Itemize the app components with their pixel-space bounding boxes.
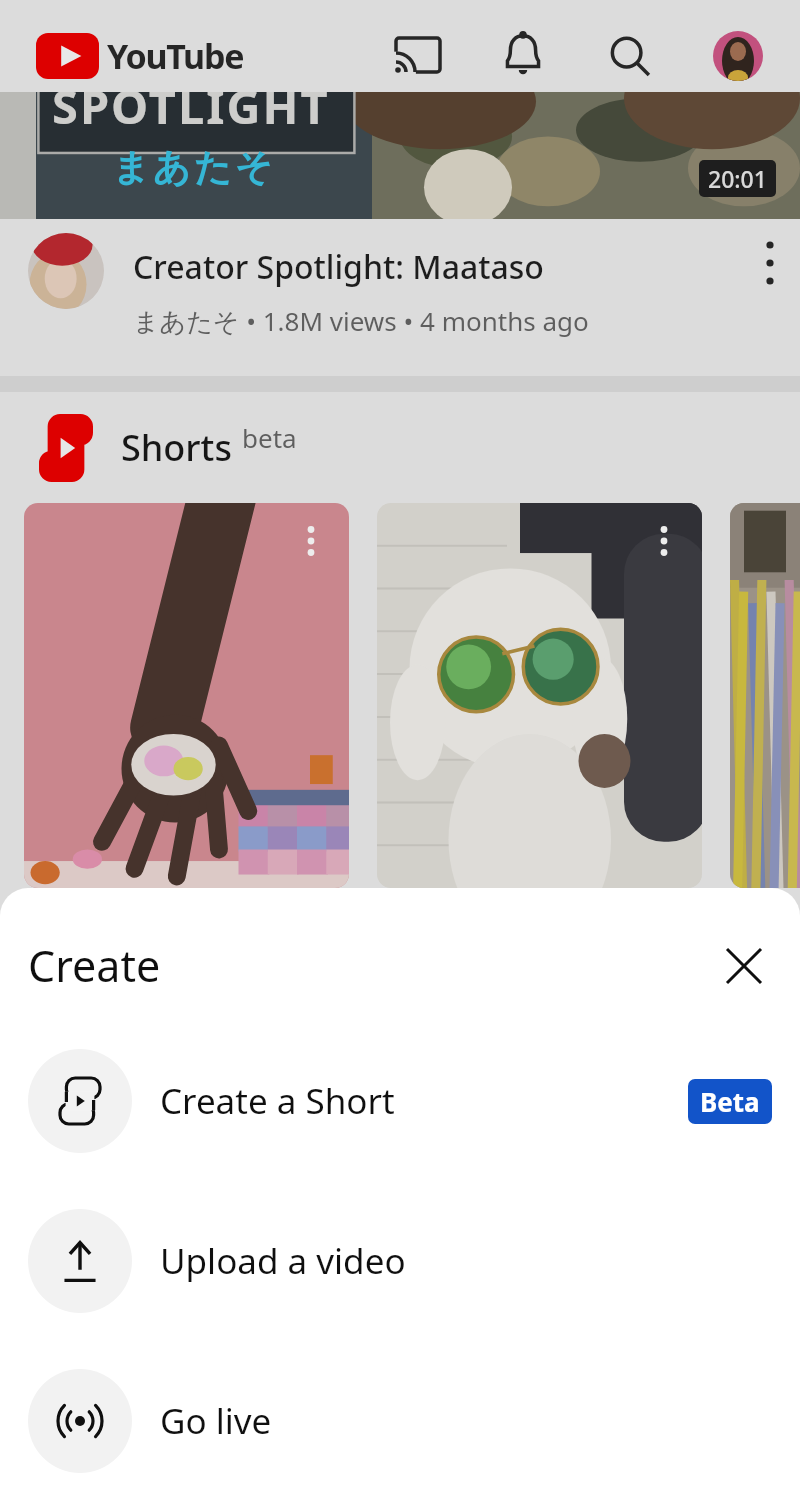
staticText: Create a Short [160, 1077, 395, 1125]
staticText: SPOTLIGHT [52, 92, 330, 138]
button[interactable] [740, 233, 800, 293]
button[interactable]: YouTube [36, 33, 244, 79]
button[interactable] [495, 28, 551, 84]
staticText: Beta [700, 1084, 760, 1119]
staticText: Go live [160, 1397, 272, 1445]
staticText: Shorts [121, 423, 232, 472]
button[interactable] [646, 523, 682, 559]
staticText: まあたそ • 1.8M views • 4 months ago [133, 303, 589, 339]
button[interactable]: Create a Short [0, 1049, 800, 1153]
staticText: 20:01 [708, 163, 767, 194]
staticText: Create [28, 936, 161, 995]
button[interactable] [293, 523, 329, 559]
button[interactable] [24, 503, 349, 888]
button[interactable] [713, 31, 763, 81]
staticText: beta [242, 420, 297, 455]
button[interactable]: Creator Spotlight: Maataso [0, 219, 800, 376]
button[interactable] [377, 503, 702, 888]
button[interactable]: SPOTLIGHT [0, 92, 800, 219]
button[interactable] [716, 938, 772, 994]
button[interactable] [390, 28, 446, 84]
button[interactable]: Upload a video [0, 1209, 800, 1313]
staticText: まあたそ [112, 144, 276, 191]
staticText: Upload a video [160, 1237, 406, 1285]
button[interactable] [602, 28, 658, 84]
button[interactable]: Go live [0, 1369, 800, 1473]
staticText: YouTube [107, 33, 244, 79]
staticText: Creator Spotlight: Maataso [133, 245, 544, 289]
button[interactable] [730, 503, 800, 888]
